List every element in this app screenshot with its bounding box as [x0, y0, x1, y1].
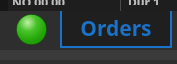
staticText: Orders: [80, 14, 152, 43]
staticText: NO 00 00: [12, 0, 65, 5]
button[interactable]: NO 00 00: [12, 0, 65, 5]
button[interactable]: Dur 1: [128, 0, 160, 5]
button[interactable]: Orders: [60, 11, 172, 48]
staticText: Dur 1: [128, 0, 160, 5]
button[interactable]: Status: online: [16, 14, 47, 45]
